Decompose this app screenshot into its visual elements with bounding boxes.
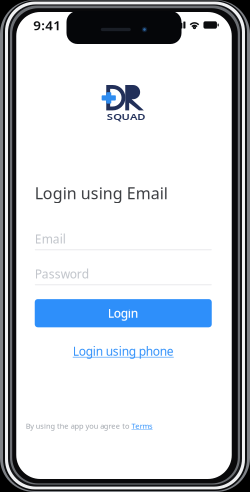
button[interactable]: Login xyxy=(35,299,212,327)
staticText: By using the app you agree to xyxy=(26,421,141,432)
staticText: Login using Email xyxy=(35,182,168,204)
staticText: Email xyxy=(35,231,66,247)
staticText: 9:41 xyxy=(33,16,61,34)
staticText: Password xyxy=(35,266,89,282)
staticText: SQUAD xyxy=(107,110,149,126)
button[interactable]: Terms xyxy=(141,421,164,432)
staticText: Terms xyxy=(141,421,164,432)
staticText: Login using phone xyxy=(73,343,174,359)
staticText: Login xyxy=(108,305,139,321)
button[interactable]: Login using phone xyxy=(35,344,212,358)
